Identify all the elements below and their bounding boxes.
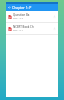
staticText: Chapter 1: P <box>12 5 32 10</box>
button[interactable]: NCERT Book Ch <box>6 23 58 34</box>
button[interactable]: Question Ba <box>6 11 58 22</box>
button[interactable]: Download <box>52 26 57 31</box>
staticText: PDF · 2.4 <box>13 16 24 19</box>
button[interactable]: Download <box>52 14 57 19</box>
staticText: PDF · 5.1 <box>13 28 24 31</box>
staticText: Question Ba <box>13 13 30 17</box>
button[interactable]: Back <box>6 4 12 11</box>
staticText: NCERT Book Ch <box>13 25 34 29</box>
